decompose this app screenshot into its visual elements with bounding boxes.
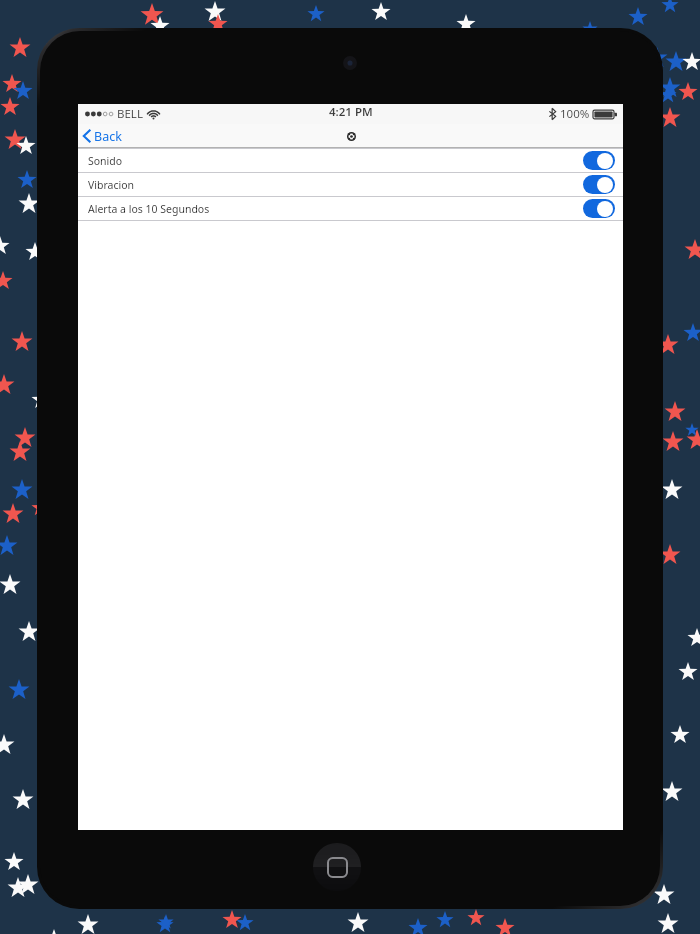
button[interactable]: Back: [78, 124, 130, 148]
button[interactable]: Toggle on: [583, 151, 615, 170]
button[interactable]: Toggle on: [583, 199, 615, 218]
button[interactable]: Vibracion: [78, 172, 623, 196]
staticText: BELL: [117, 106, 143, 122]
staticText: Vibracion: [88, 178, 135, 192]
button[interactable]: Sonido: [78, 148, 623, 172]
staticText: Sonido: [88, 154, 123, 168]
staticText: 100%: [560, 106, 590, 122]
staticText: 4:21 PM: [329, 104, 373, 120]
button[interactable]: Alerta a los 10 Segundos: [78, 196, 623, 220]
button[interactable]: Toggle on: [583, 175, 615, 194]
staticText: Back: [94, 128, 122, 145]
staticText: Alerta a los 10 Segundos: [88, 202, 210, 216]
button[interactable]: Settings: [341, 126, 361, 146]
button[interactable]: Home: [313, 843, 361, 891]
